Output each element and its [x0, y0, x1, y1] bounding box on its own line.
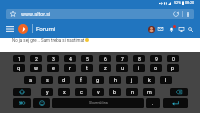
button[interactable]: n — [126, 88, 138, 96]
button[interactable]: Symbols — [13, 98, 31, 108]
staticText: 4 — [69, 56, 72, 62]
button[interactable]: y — [41, 88, 53, 96]
staticText: g — [96, 77, 100, 83]
button[interactable]: Slovenščina — [52, 98, 144, 108]
button[interactable]: More options — [183, 9, 192, 19]
button[interactable]: s — [41, 76, 53, 84]
button[interactable]: . — [146, 98, 160, 108]
button[interactable]: 0 — [167, 55, 179, 62]
button[interactable]: Notifications — [167, 25, 176, 34]
staticText: m — [147, 89, 152, 95]
button[interactable]: f — [75, 76, 87, 84]
button[interactable]: Profile — [148, 26, 155, 33]
button[interactable]: t — [81, 64, 93, 72]
button[interactable]: Search — [186, 25, 195, 34]
button[interactable]: v — [92, 88, 104, 96]
staticText: No ja sej gre .. Sam treba si nastimat — [12, 38, 85, 43]
staticText: 5 — [86, 56, 89, 62]
button[interactable]: e — [47, 64, 59, 72]
staticText: a — [29, 77, 32, 83]
staticText: w — [34, 65, 39, 71]
staticText: 8 — [138, 56, 141, 62]
staticText: s — [46, 77, 49, 83]
staticText: t — [86, 65, 88, 71]
button[interactable]: 6 — [99, 55, 111, 62]
button[interactable]: 7 — [116, 55, 128, 62]
button[interactable]: i — [133, 64, 145, 72]
button[interactable]: q — [13, 64, 25, 72]
staticText: f — [80, 77, 82, 83]
staticText: h — [114, 77, 117, 83]
staticText: p — [171, 65, 175, 71]
button[interactable]: Alerts — [177, 25, 186, 34]
button[interactable]: Address bar — [6, 9, 194, 19]
button[interactable]: 1 — [13, 55, 25, 62]
staticText: 6 — [104, 56, 107, 62]
button[interactable]: Backspace — [170, 88, 188, 96]
staticText: 52% — [174, 1, 181, 5]
button[interactable]: z — [99, 64, 111, 72]
button[interactable]: Emoji — [33, 98, 50, 108]
staticText: l — [165, 77, 167, 83]
button[interactable]: j — [126, 76, 138, 84]
staticText: u — [121, 65, 124, 71]
button[interactable]: Enter — [163, 98, 188, 108]
button[interactable]: w — [30, 64, 42, 72]
staticText: x — [63, 89, 66, 95]
button[interactable]: 9 — [150, 55, 162, 62]
button[interactable]: 3 — [47, 55, 59, 62]
staticText: b — [113, 89, 117, 95]
button[interactable]: b — [109, 88, 121, 96]
staticText: o — [154, 65, 158, 71]
button[interactable]: h — [109, 76, 121, 84]
button[interactable]: a — [24, 76, 36, 84]
button[interactable]: 8 — [133, 55, 145, 62]
staticText: 1 — [18, 56, 21, 62]
button[interactable]: Messages — [156, 25, 165, 33]
staticText: www.altor.si — [21, 11, 51, 17]
staticText: i — [138, 65, 140, 71]
button[interactable]: g — [92, 76, 104, 84]
button[interactable]: c — [75, 88, 87, 96]
staticText: 08:20 — [185, 1, 195, 5]
button[interactable]: 5 — [81, 55, 93, 62]
staticText: 9 — [155, 56, 158, 62]
staticText: 2 — [35, 56, 38, 62]
button[interactable]: Navigation menu — [4, 23, 15, 34]
staticText: q — [17, 65, 21, 71]
button[interactable]: Shift — [13, 88, 31, 96]
staticText: Forumi — [36, 25, 56, 32]
staticText: j — [131, 77, 133, 83]
button[interactable]: l — [160, 76, 172, 84]
staticText: k — [148, 77, 151, 83]
button[interactable]: u — [116, 64, 128, 72]
staticText: z — [104, 65, 107, 71]
staticText: 3 — [52, 56, 55, 62]
button[interactable]: 4 — [64, 55, 76, 62]
button[interactable]: m — [143, 88, 155, 96]
button[interactable]: x — [58, 88, 70, 96]
staticText: r — [69, 65, 71, 71]
button[interactable]: Site logo — [18, 24, 28, 34]
button[interactable]: d — [58, 76, 70, 84]
button[interactable]: Reload — [170, 9, 181, 19]
staticText: c — [80, 89, 83, 95]
staticText: 7 — [121, 56, 124, 62]
button[interactable]: k — [143, 76, 155, 84]
button[interactable]: o — [150, 64, 162, 72]
staticText: y — [46, 89, 49, 95]
staticText: 0 — [172, 56, 175, 62]
staticText: d — [62, 77, 66, 83]
staticText: . — [152, 100, 154, 106]
staticText: v — [97, 89, 100, 95]
button[interactable]: 2 — [30, 55, 42, 62]
button[interactable]: r — [64, 64, 76, 72]
staticText: Slovenščina — [89, 101, 108, 105]
button[interactable]: p — [167, 64, 179, 72]
staticText: n — [131, 89, 134, 95]
staticText: e — [52, 65, 55, 71]
